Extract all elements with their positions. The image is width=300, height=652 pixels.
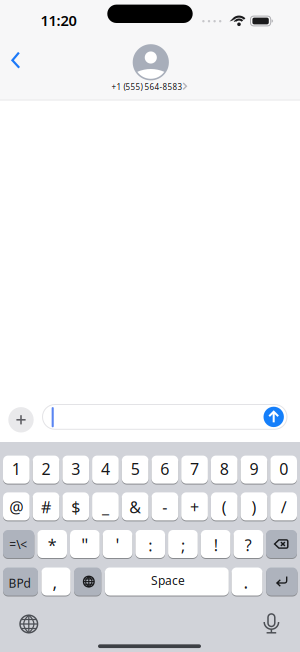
staticText: =\< xyxy=(9,536,27,552)
button[interactable]: 5 xyxy=(0,0,300,652)
staticText: BPd xyxy=(8,575,30,591)
button[interactable]: 3 xyxy=(0,0,300,652)
button[interactable]: 8 xyxy=(0,0,300,652)
button[interactable]: : xyxy=(0,0,300,652)
button[interactable]: ' xyxy=(0,0,300,652)
button[interactable]: $ xyxy=(0,0,300,652)
button[interactable]: # xyxy=(0,0,300,652)
staticText: 2 xyxy=(42,458,51,479)
button[interactable]: 7 xyxy=(0,0,300,652)
staticText: # xyxy=(41,496,51,518)
button[interactable]: ? xyxy=(0,0,300,652)
button[interactable]: 9 xyxy=(0,0,300,652)
staticText: ' xyxy=(115,533,119,556)
staticText: 11:20 xyxy=(40,10,76,30)
staticText: 5 xyxy=(131,458,140,479)
staticText: ; xyxy=(181,535,185,556)
button[interactable]: BPd xyxy=(0,0,300,652)
staticText: ) xyxy=(251,496,256,518)
staticText: ? xyxy=(245,534,252,556)
staticText: - xyxy=(162,496,167,518)
staticText: 7 xyxy=(190,458,199,479)
staticText: 1 xyxy=(12,458,21,479)
button[interactable]: , xyxy=(0,0,300,652)
button[interactable]: ; xyxy=(0,0,300,652)
button[interactable]: =\< xyxy=(0,0,300,652)
staticText: +1 (555) 564-8583 xyxy=(111,82,182,92)
button[interactable]: 2 xyxy=(0,0,300,652)
staticText: & xyxy=(129,496,141,518)
button[interactable]: _ xyxy=(0,0,300,652)
staticText: 6 xyxy=(160,458,169,479)
staticText: $ xyxy=(71,496,80,518)
button[interactable] xyxy=(0,0,42,44)
button[interactable]: * xyxy=(0,0,300,652)
button[interactable]: / xyxy=(0,0,300,652)
staticText: 3 xyxy=(71,458,80,479)
button[interactable]: Space xyxy=(0,0,300,652)
staticText: : xyxy=(148,535,152,556)
staticText: 8 xyxy=(220,458,229,479)
staticText: ! xyxy=(214,534,218,556)
button[interactable]: 1 xyxy=(0,0,300,652)
button[interactable]: " xyxy=(0,0,300,652)
staticText: ( xyxy=(222,496,227,518)
button[interactable] xyxy=(0,0,300,652)
button[interactable]: 0 xyxy=(0,0,300,652)
button[interactable] xyxy=(0,0,300,652)
button[interactable]: & xyxy=(0,0,300,652)
button[interactable]: . xyxy=(0,0,300,652)
staticText: 4 xyxy=(101,458,110,479)
staticText: " xyxy=(81,533,88,556)
staticText: 9 xyxy=(249,458,258,479)
button[interactable]: @ xyxy=(0,0,300,652)
button[interactable] xyxy=(0,0,300,652)
button[interactable] xyxy=(0,0,300,652)
staticText: 0 xyxy=(279,458,288,479)
staticText: / xyxy=(281,496,287,518)
button[interactable]: ) xyxy=(0,0,300,652)
button[interactable]: 6 xyxy=(0,0,300,652)
staticText: + xyxy=(190,496,199,518)
button[interactable]: ( xyxy=(0,0,300,652)
button[interactable]: - xyxy=(0,0,300,652)
staticText: . xyxy=(243,571,248,594)
staticText: _ xyxy=(102,496,109,518)
button[interactable] xyxy=(0,0,300,652)
button[interactable]: 4 xyxy=(0,0,300,652)
button[interactable]: ! xyxy=(0,0,300,652)
staticText: , xyxy=(52,571,57,594)
staticText: @ xyxy=(9,496,23,518)
staticText: Space xyxy=(151,572,185,588)
staticText: * xyxy=(48,534,57,555)
button[interactable]: +1 (555) 564-8583 xyxy=(0,0,300,652)
button[interactable]: + xyxy=(0,0,300,652)
